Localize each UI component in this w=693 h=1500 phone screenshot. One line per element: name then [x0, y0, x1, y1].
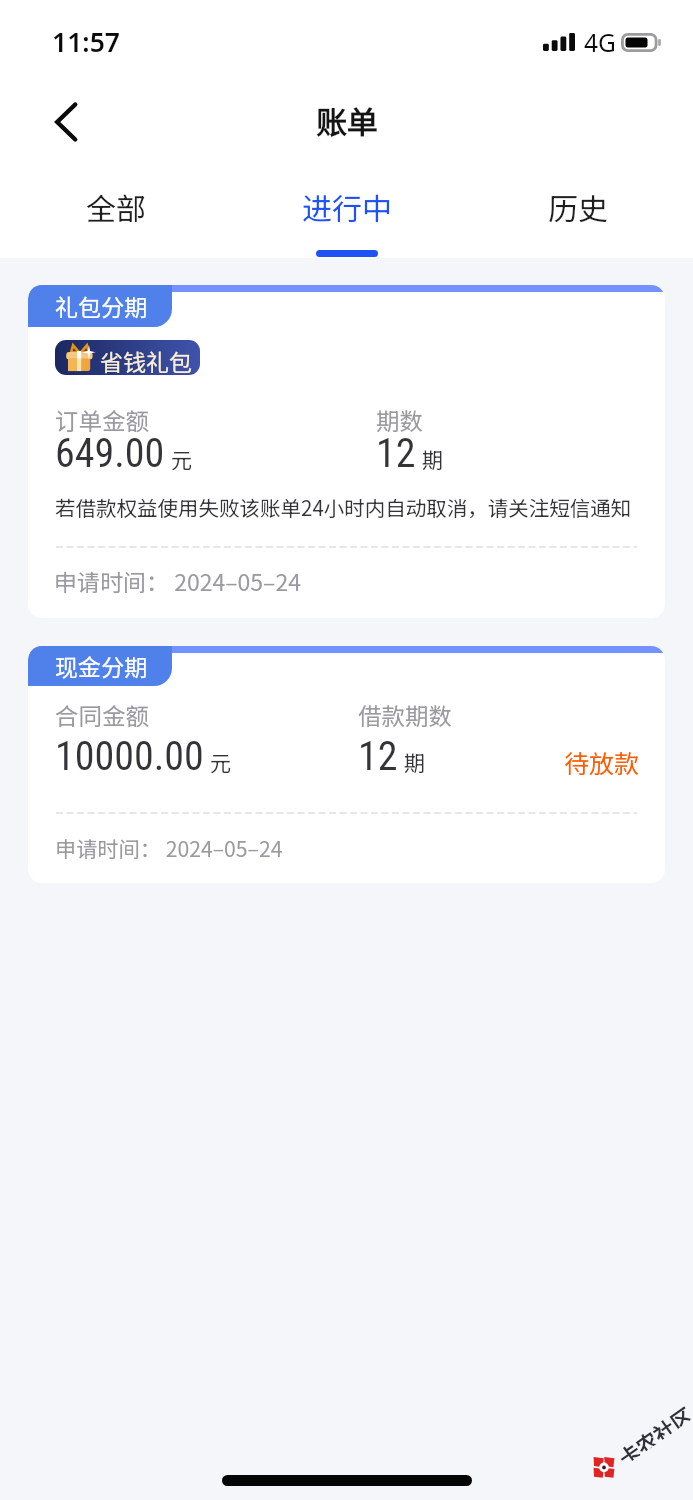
staticText: 期数 — [376, 403, 423, 437]
button[interactable]: 礼包分期 — [28, 285, 665, 618]
staticText: 期 — [404, 747, 425, 777]
staticText: 全部 — [86, 185, 146, 228]
staticText: 11:57 — [52, 24, 120, 60]
staticText: 待放款 — [564, 744, 640, 780]
staticText: 历史 — [548, 185, 608, 228]
staticText: 申请时间： 2024–05–24 — [54, 564, 301, 597]
staticText: 649.00 — [55, 430, 165, 477]
staticText: 卡农社区 — [612, 1400, 693, 1466]
staticText: 订单金额 — [55, 403, 149, 437]
staticText: 申请时间： 2024–05–24 — [55, 832, 283, 863]
staticText: 若借款权益使用失败该账单24小时内自动取消，请关注短信通知 — [55, 492, 632, 522]
button[interactable]: 现金分期 — [28, 646, 665, 883]
button[interactable]: 进行中 — [231, 166, 462, 258]
staticText: 省钱礼包 — [100, 344, 192, 375]
staticText: 元 — [171, 444, 192, 474]
staticText: 账单 — [316, 98, 378, 143]
button[interactable]: 全部 — [0, 166, 231, 258]
button[interactable]: Back — [36, 92, 96, 152]
staticText: 礼包分期 — [55, 289, 147, 322]
staticText: 现金分期 — [55, 649, 147, 682]
staticText: 合同金额 — [55, 698, 149, 732]
staticText: 10000.00 — [55, 733, 204, 780]
staticText: 12 — [376, 430, 416, 477]
staticText: 进行中 — [302, 185, 392, 228]
staticText: 元 — [210, 747, 231, 777]
staticText: 4G — [584, 26, 616, 59]
staticText: 借款期数 — [358, 698, 452, 732]
staticText: 12 — [358, 733, 398, 780]
staticText: 期 — [422, 444, 443, 474]
button[interactable]: 历史 — [462, 166, 693, 258]
